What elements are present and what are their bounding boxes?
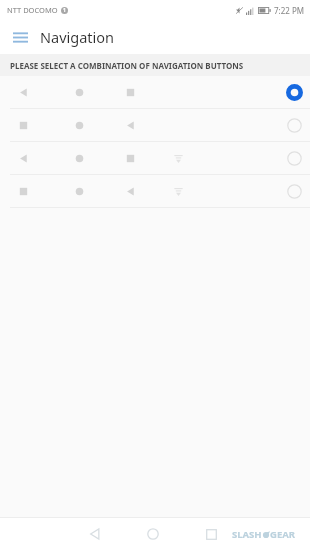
staticText: PLEASE SELECT A COMBINATION OF NAVIGATIO… xyxy=(10,60,244,71)
button[interactable]: Navigation button combination option xyxy=(0,142,310,174)
button[interactable]: Navigation button combination option xyxy=(0,76,310,108)
button[interactable]: Back xyxy=(78,518,112,550)
staticText: Navigation xyxy=(40,27,115,47)
button[interactable]: Open navigation menu xyxy=(8,25,32,49)
button[interactable]: Navigation button combination option xyxy=(0,175,310,207)
button[interactable]: Navigation button combination option xyxy=(0,109,310,141)
staticText: 7:22 PM xyxy=(274,5,305,16)
button[interactable]: Home xyxy=(136,518,170,550)
staticText: SLASH xyxy=(232,528,262,541)
staticText: 1 xyxy=(63,7,66,14)
staticText: GEAR xyxy=(270,528,296,541)
staticText: NTT DOCOMO xyxy=(7,5,58,15)
button[interactable]: Recent apps xyxy=(194,518,228,550)
